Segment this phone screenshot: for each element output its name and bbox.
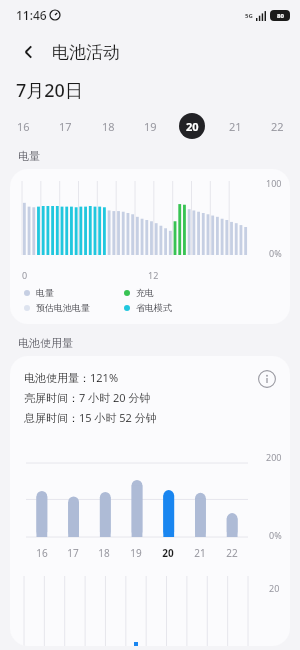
staticText: 电池使用量：121% [24, 370, 119, 385]
button[interactable]: 19 [137, 113, 163, 139]
staticText: 19 [130, 546, 142, 560]
staticText: 电池活动 [52, 42, 120, 63]
staticText: 21 [194, 546, 206, 560]
staticText: 5G [245, 12, 253, 20]
button[interactable]: 电池使用量：121% [10, 356, 290, 646]
staticText: 亮屏时间：7 小时 20 分钟 [24, 390, 151, 405]
staticText: 16 [36, 546, 48, 560]
button[interactable]: 17 [52, 113, 78, 139]
button[interactable]: Info [256, 368, 278, 390]
staticText: 充电 [136, 287, 154, 298]
button[interactable]: Back [14, 37, 44, 67]
staticText: 电池使用量 [18, 336, 73, 350]
staticText: 200 [266, 451, 282, 463]
staticText: 19 [144, 119, 157, 134]
staticText: 17 [59, 119, 72, 134]
staticText: 电量 [36, 287, 54, 298]
staticText: 18 [98, 546, 110, 560]
button[interactable]: 18 [95, 113, 121, 139]
staticText: 11:46 [16, 7, 47, 23]
staticText: 20 [186, 119, 199, 134]
staticText: 0% [269, 247, 282, 259]
button[interactable]: 20 [179, 113, 205, 139]
button[interactable]: 22 [264, 113, 290, 139]
button[interactable]: 100 [10, 169, 290, 324]
staticText: 0 [22, 269, 28, 281]
staticText: 预估电池电量 [36, 302, 90, 313]
staticText: 0% [269, 529, 282, 541]
staticText: 息屏时间：15 小时 52 分钟 [24, 410, 157, 425]
staticText: 省电模式 [136, 302, 172, 313]
button[interactable]: 21 [222, 113, 248, 139]
staticText: 18 [102, 119, 115, 134]
button[interactable]: 16 [10, 113, 36, 139]
staticText: 22 [226, 546, 238, 560]
staticText: 100 [266, 177, 282, 189]
staticText: 20 [162, 546, 174, 560]
staticText: 80 [277, 12, 284, 20]
staticText: 17 [67, 546, 79, 560]
staticText: 20 [269, 582, 280, 594]
staticText: 7月20日 [16, 78, 83, 103]
staticText: 22 [271, 119, 284, 134]
staticText: 21 [229, 119, 242, 134]
staticText: 电量 [18, 149, 40, 163]
staticText: 12 [148, 269, 159, 281]
staticText: 16 [17, 119, 30, 134]
